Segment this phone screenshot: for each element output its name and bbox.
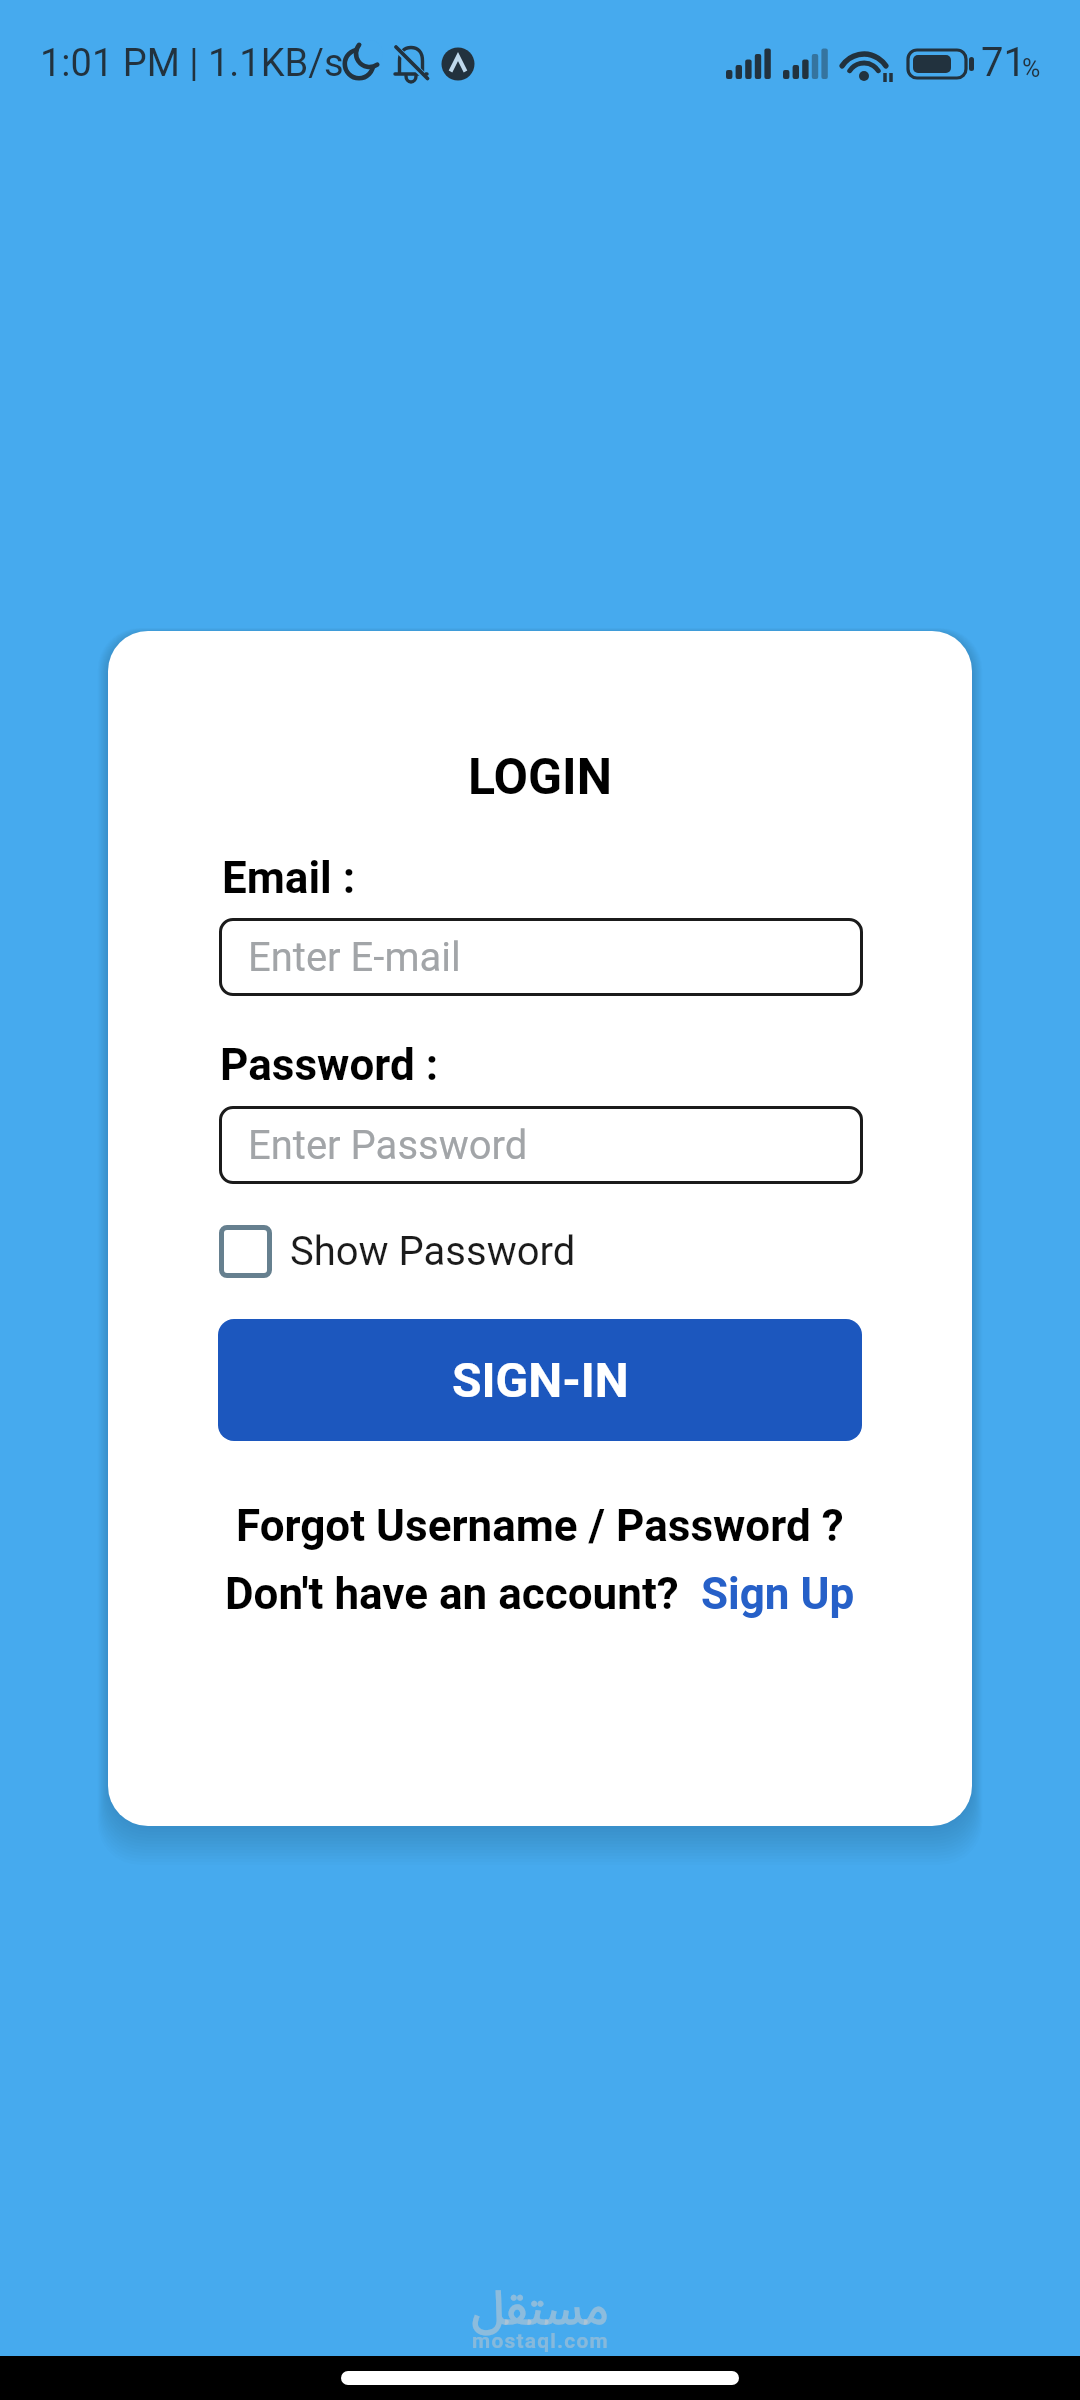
staticText: Email :: [222, 852, 356, 904]
button[interactable]: Enter E-mail: [219, 918, 863, 996]
button[interactable]: SIGN-IN: [218, 1319, 862, 1441]
staticText: 71: [981, 39, 1026, 86]
staticText: SIGN-IN: [452, 1352, 629, 1408]
button[interactable]: [341, 2371, 739, 2385]
button[interactable]: Enter Password: [219, 1106, 863, 1184]
staticText: مستقل: [472, 2275, 609, 2338]
staticText: Enter Password: [248, 1122, 528, 1169]
staticText: Sign Up: [701, 1568, 855, 1620]
staticText: mostaql.com: [472, 2329, 609, 2354]
staticText: %: [1022, 54, 1041, 83]
staticText: 1:01 PM | 1.1KB/s: [40, 41, 344, 86]
staticText: Enter E-mail: [248, 934, 461, 981]
staticText: Don't have an account?: [225, 1568, 701, 1620]
staticText: Show Password: [290, 1228, 576, 1275]
staticText: Password :: [220, 1039, 439, 1091]
staticText: LOGIN: [468, 748, 613, 807]
button[interactable]: Show Password: [219, 1225, 576, 1278]
staticText: Forgot Username / Password ?: [236, 1500, 844, 1552]
button[interactable]: Sign Up: [701, 1568, 855, 1620]
